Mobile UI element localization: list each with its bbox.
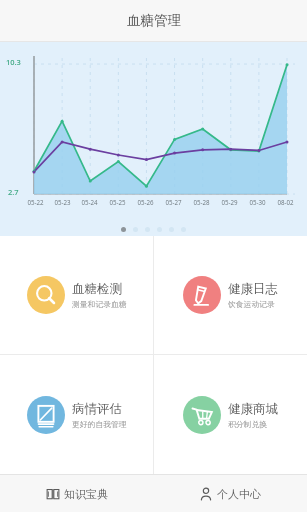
staticText: 05-27	[165, 198, 182, 206]
staticText: 测量和记录血糖	[72, 299, 127, 309]
staticText: 知识宝典	[64, 487, 108, 501]
button[interactable]: 血糖检测	[0, 236, 153, 354]
staticText: 2.7	[8, 187, 19, 197]
button[interactable]: 健康商城	[154, 355, 307, 474]
staticText: 08-02	[277, 198, 294, 206]
staticText: 血糖管理	[127, 12, 181, 29]
staticText: 10.3	[6, 57, 21, 67]
button[interactable]: 健康日志	[154, 236, 307, 354]
staticText: 病情评估	[72, 401, 122, 417]
staticText: 05-29	[221, 198, 238, 206]
staticText: 饮食运动记录	[228, 299, 275, 309]
staticText: 积分制兑换	[228, 419, 267, 429]
staticText: 05-25	[109, 198, 126, 206]
staticText: 05-23	[54, 198, 71, 206]
staticText: 个人中心	[217, 487, 261, 501]
button[interactable]: 病情评估	[0, 355, 153, 474]
button[interactable]: 知识宝典	[0, 475, 153, 512]
staticText: 健康商城	[228, 401, 278, 417]
staticText: 05-24	[81, 198, 98, 206]
button[interactable]: 个人中心	[153, 475, 307, 512]
staticText: 05-28	[193, 198, 210, 206]
staticText: 健康日志	[228, 281, 278, 297]
staticText: 05-22	[27, 198, 44, 206]
other: 知识宝典	[46, 487, 60, 501]
staticText: 血糖检测	[72, 281, 122, 297]
other: 个人中心	[199, 487, 213, 501]
staticText: 05-26	[137, 198, 154, 206]
staticText: 更好的自我管理	[72, 419, 127, 429]
staticText: 05-30	[249, 198, 266, 206]
